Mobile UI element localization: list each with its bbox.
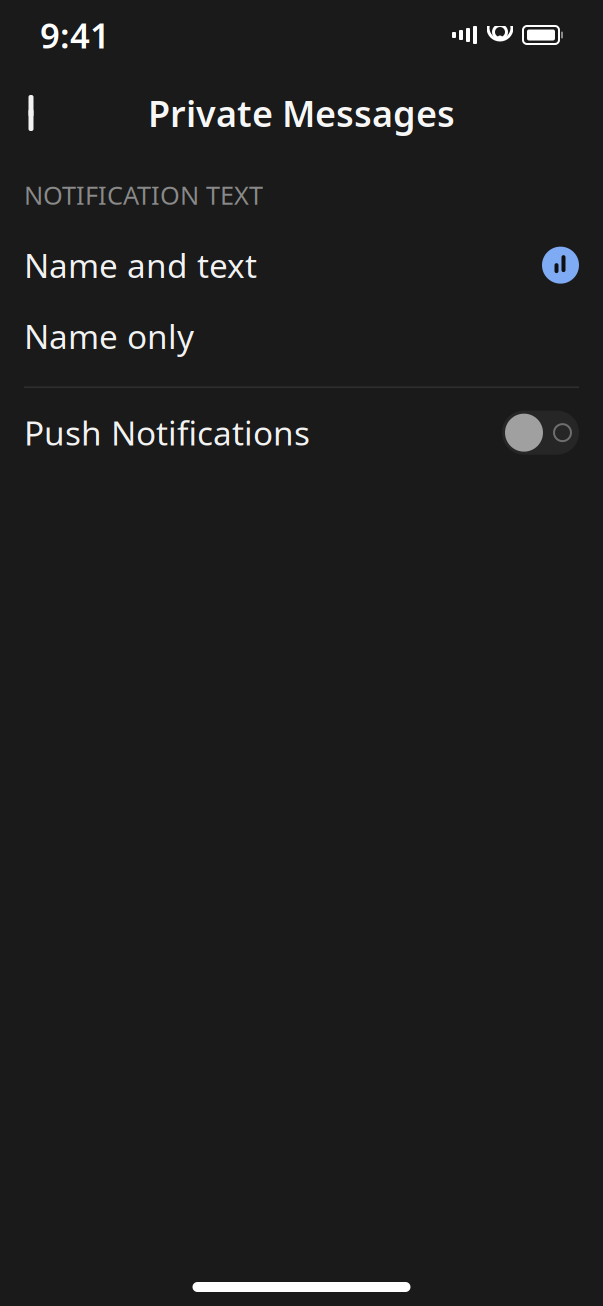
button[interactable]: Name only [0,301,603,372]
button[interactable]: Back [6,85,62,141]
staticText: Private Messages [148,89,455,137]
staticText: 9:41 [40,12,110,58]
staticText: Name only [24,314,194,358]
button[interactable]: Push Notifications [0,402,603,464]
staticText: Name and text [24,243,257,287]
staticText: Push Notifications [24,410,310,455]
button[interactable]: Name and text [0,230,603,301]
staticText: NOTIFICATION TEXT [24,178,263,212]
